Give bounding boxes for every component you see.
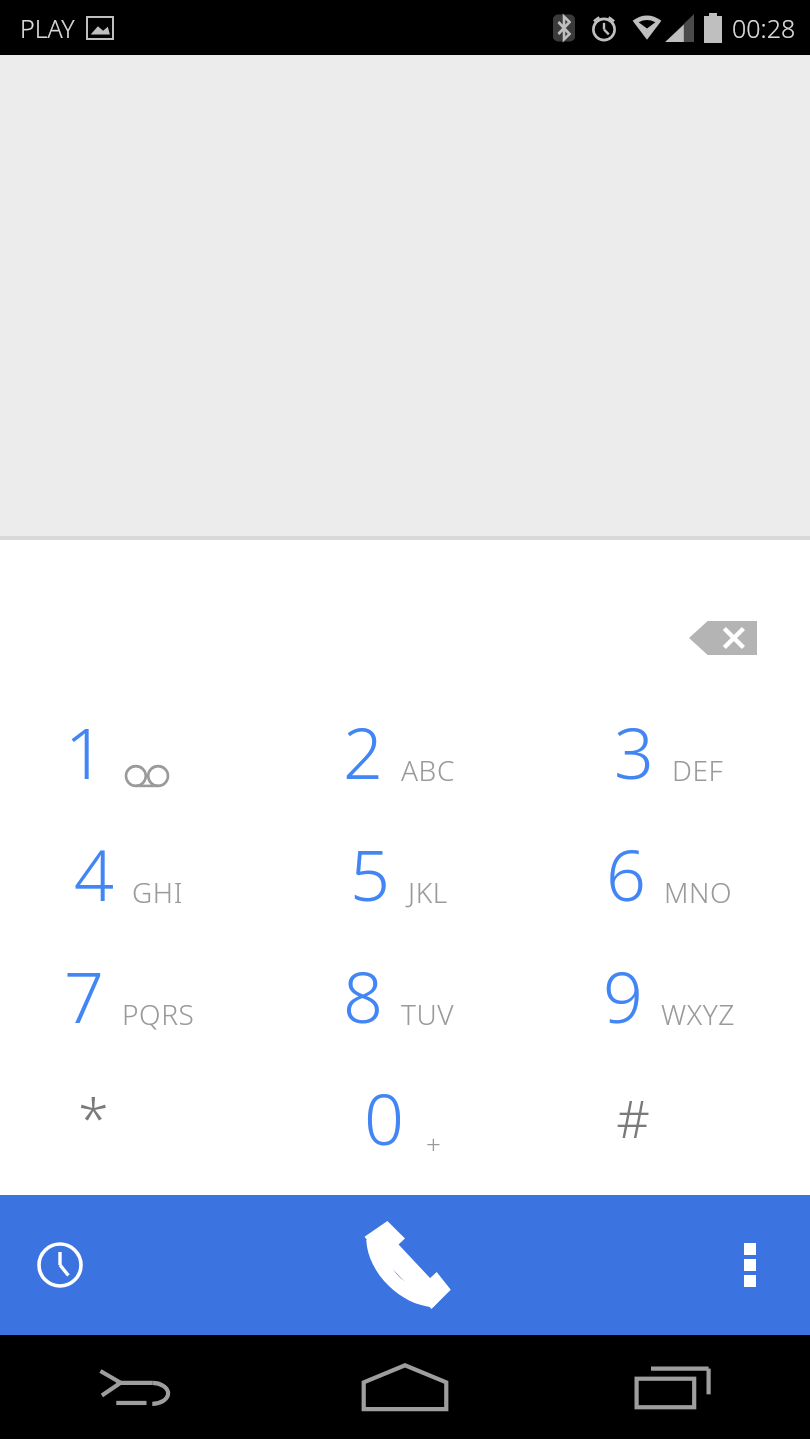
staticText: + [426, 1126, 442, 1161]
staticText: 7 [64, 948, 104, 1043]
staticText: 9 [603, 948, 643, 1043]
staticText: 3 [614, 704, 654, 799]
button[interactable]: Recent apps [540, 1335, 810, 1439]
button[interactable]: Call [340, 1200, 470, 1330]
button[interactable]: 9 [540, 934, 810, 1056]
staticText: 2 [343, 704, 383, 799]
button[interactable]: Home [270, 1335, 540, 1439]
staticText: WXYZ [661, 995, 735, 1033]
button[interactable]: 0 [270, 1056, 540, 1178]
staticText: 5 [350, 826, 390, 921]
staticText: MNO [664, 873, 733, 911]
button[interactable]: * [0, 1056, 270, 1178]
staticText: 00:28 [732, 11, 796, 45]
button[interactable]: 4 [0, 812, 270, 934]
staticText: JKL [408, 873, 448, 911]
button[interactable]: 6 [540, 812, 810, 934]
button[interactable]: Back [0, 1335, 270, 1439]
staticText: ABC [401, 751, 455, 789]
staticText: 8 [343, 948, 383, 1043]
staticText: PLAY [20, 11, 75, 45]
button[interactable]: 5 [270, 812, 540, 934]
staticText: 4 [74, 826, 114, 921]
button[interactable]: 8 [270, 934, 540, 1056]
button[interactable]: 2 [270, 690, 540, 812]
staticText: TUV [401, 995, 455, 1033]
staticText: 6 [606, 826, 646, 921]
staticText: GHI [132, 873, 184, 911]
staticText: # [616, 1082, 650, 1153]
staticText: 0 [364, 1070, 404, 1165]
button[interactable]: Call history [12, 1217, 108, 1313]
staticText: DEF [672, 751, 724, 789]
staticText: * [78, 1079, 109, 1155]
button[interactable]: Backspace [668, 603, 778, 673]
button[interactable]: 3 [540, 690, 810, 812]
button[interactable]: # [540, 1056, 810, 1178]
staticText: PQRS [122, 995, 195, 1033]
button[interactable]: 7 [0, 934, 270, 1056]
button[interactable]: More options [704, 1219, 796, 1311]
button[interactable]: 1 [0, 690, 270, 812]
staticText: 1 [65, 704, 105, 799]
